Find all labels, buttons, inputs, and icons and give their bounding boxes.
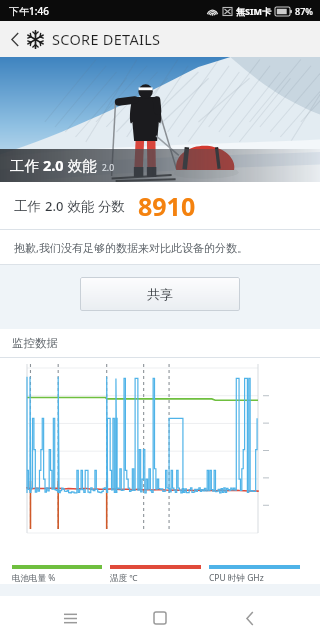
staticText: 监控数据	[12, 336, 58, 350]
staticText: CPU 时钟 GHz	[209, 572, 264, 584]
button[interactable]: Back	[230, 598, 270, 638]
staticText: 工作	[14, 197, 45, 215]
staticText: 87%	[295, 5, 313, 17]
button[interactable]: Recent apps	[50, 598, 90, 638]
staticText: 抱歉,我们没有足够的数据来对比此设备的分数。	[14, 240, 248, 255]
button[interactable]: 共享	[80, 277, 240, 311]
staticText: 效能 分数	[64, 197, 126, 215]
staticText: 效能	[64, 155, 97, 175]
staticText: 电池电量 %	[12, 572, 56, 584]
staticText: 共享	[147, 286, 173, 302]
button[interactable]: Back	[4, 28, 26, 50]
staticText: 無SIM卡	[236, 5, 271, 17]
staticText: 2.0	[43, 155, 64, 175]
staticText: 2.0	[45, 197, 64, 215]
staticText: 8910	[138, 189, 196, 223]
staticText: 工作	[10, 155, 43, 175]
button[interactable]: Home	[140, 598, 180, 638]
staticText: 2.0	[102, 162, 115, 174]
staticText: 温度 ℃	[110, 572, 138, 584]
staticText: SCORE DETAILS	[52, 29, 161, 49]
staticText: 下午1:46	[9, 4, 49, 18]
